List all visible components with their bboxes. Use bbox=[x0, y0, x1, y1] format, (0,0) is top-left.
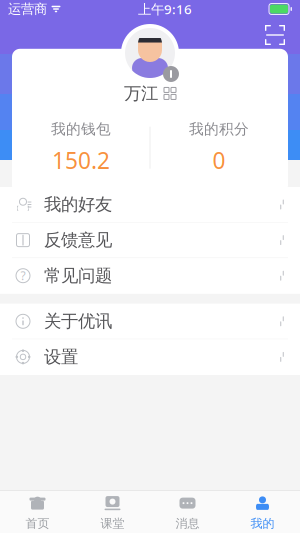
staticText: 关于优讯 bbox=[44, 311, 112, 332]
button[interactable]: ? bbox=[0, 258, 300, 294]
staticText: 运营商 bbox=[8, 1, 47, 17]
button[interactable]: 我的好友 bbox=[0, 187, 300, 223]
staticText: 我的 bbox=[250, 516, 274, 531]
staticText: 我的钱包 bbox=[51, 120, 111, 138]
button[interactable]: 我的 bbox=[225, 491, 300, 533]
staticText: 设置 bbox=[44, 346, 78, 368]
staticText: 0 bbox=[212, 145, 225, 175]
button[interactable]: 设置 bbox=[0, 339, 300, 375]
staticText: 上午9:16 bbox=[138, 0, 192, 18]
staticText: 消息 bbox=[175, 516, 199, 531]
button[interactable]: 消息 bbox=[150, 491, 225, 533]
staticText: 首页 bbox=[25, 516, 49, 531]
button[interactable]: 编辑头像 bbox=[121, 24, 179, 82]
button[interactable]: 首页 bbox=[0, 491, 75, 533]
staticText: 我的好友 bbox=[44, 194, 112, 215]
button[interactable]: 我的钱包 bbox=[12, 120, 149, 175]
staticText: ? bbox=[20, 268, 25, 284]
staticText: 150.2 bbox=[52, 145, 110, 175]
staticText: 我的积分 bbox=[189, 120, 249, 138]
button[interactable]: 我的二维码 bbox=[164, 87, 176, 99]
staticText: 课堂 bbox=[100, 516, 124, 531]
button[interactable]: 课堂 bbox=[75, 491, 150, 533]
button[interactable]: 扫一扫 bbox=[262, 22, 288, 48]
staticText: 反馈意见 bbox=[44, 229, 112, 251]
button[interactable]: 关于优讯 bbox=[0, 304, 300, 339]
button[interactable]: 我的积分 bbox=[150, 120, 287, 175]
button[interactable]: 反馈意见 bbox=[0, 223, 300, 258]
staticText: 常见问题 bbox=[44, 265, 112, 286]
staticText: 万江 bbox=[124, 83, 158, 104]
